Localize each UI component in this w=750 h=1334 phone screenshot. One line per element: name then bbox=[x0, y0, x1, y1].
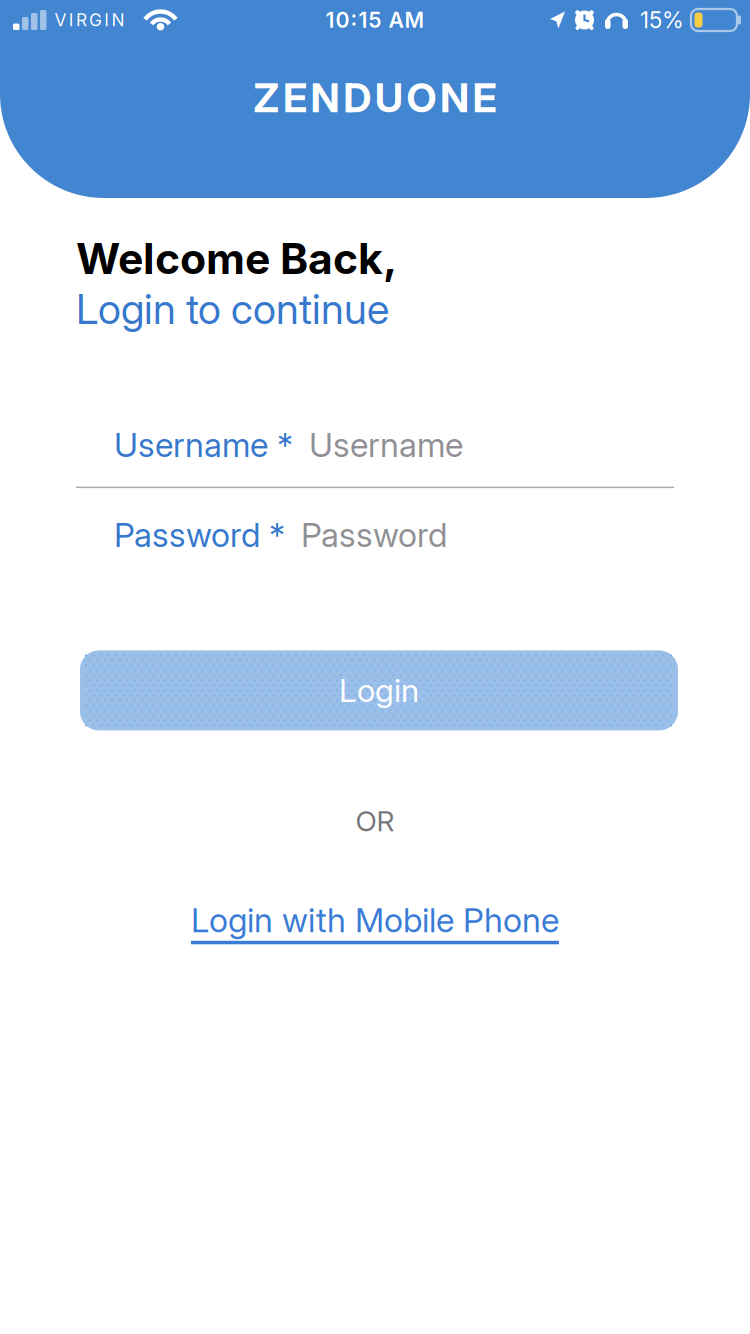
staticText: 10:15 AM bbox=[325, 7, 424, 33]
staticText: U bbox=[375, 74, 403, 121]
staticText: E bbox=[473, 74, 497, 121]
staticText: O bbox=[406, 74, 436, 121]
staticText: N bbox=[111, 10, 124, 30]
staticText: V bbox=[54, 10, 66, 30]
staticText: R bbox=[76, 10, 87, 30]
button[interactable]: Login with Mobile Phone bbox=[191, 900, 559, 940]
staticText: Password bbox=[301, 515, 447, 554]
staticText: Login with Mobile Phone bbox=[191, 900, 559, 940]
button[interactable]: Password * bbox=[0, 515, 750, 554]
button[interactable]: Username * bbox=[0, 425, 750, 465]
staticText: N bbox=[311, 74, 340, 121]
staticText: Z bbox=[253, 74, 279, 121]
staticText: D bbox=[343, 74, 371, 121]
staticText: N bbox=[440, 74, 469, 121]
staticText: I bbox=[104, 10, 109, 30]
staticText: G bbox=[89, 10, 102, 30]
staticText: I bbox=[69, 10, 74, 30]
staticText: Welcome Back, bbox=[76, 233, 397, 283]
staticText: E bbox=[283, 74, 307, 121]
staticText: Username * bbox=[114, 425, 293, 465]
staticText: 15% bbox=[640, 7, 684, 33]
staticText: Password * bbox=[114, 515, 285, 554]
staticText: Username bbox=[309, 425, 463, 465]
staticText: Login bbox=[339, 672, 419, 709]
staticText: Login to continue bbox=[76, 284, 389, 333]
staticText: OR bbox=[355, 804, 394, 837]
button[interactable]: Login bbox=[80, 650, 678, 730]
